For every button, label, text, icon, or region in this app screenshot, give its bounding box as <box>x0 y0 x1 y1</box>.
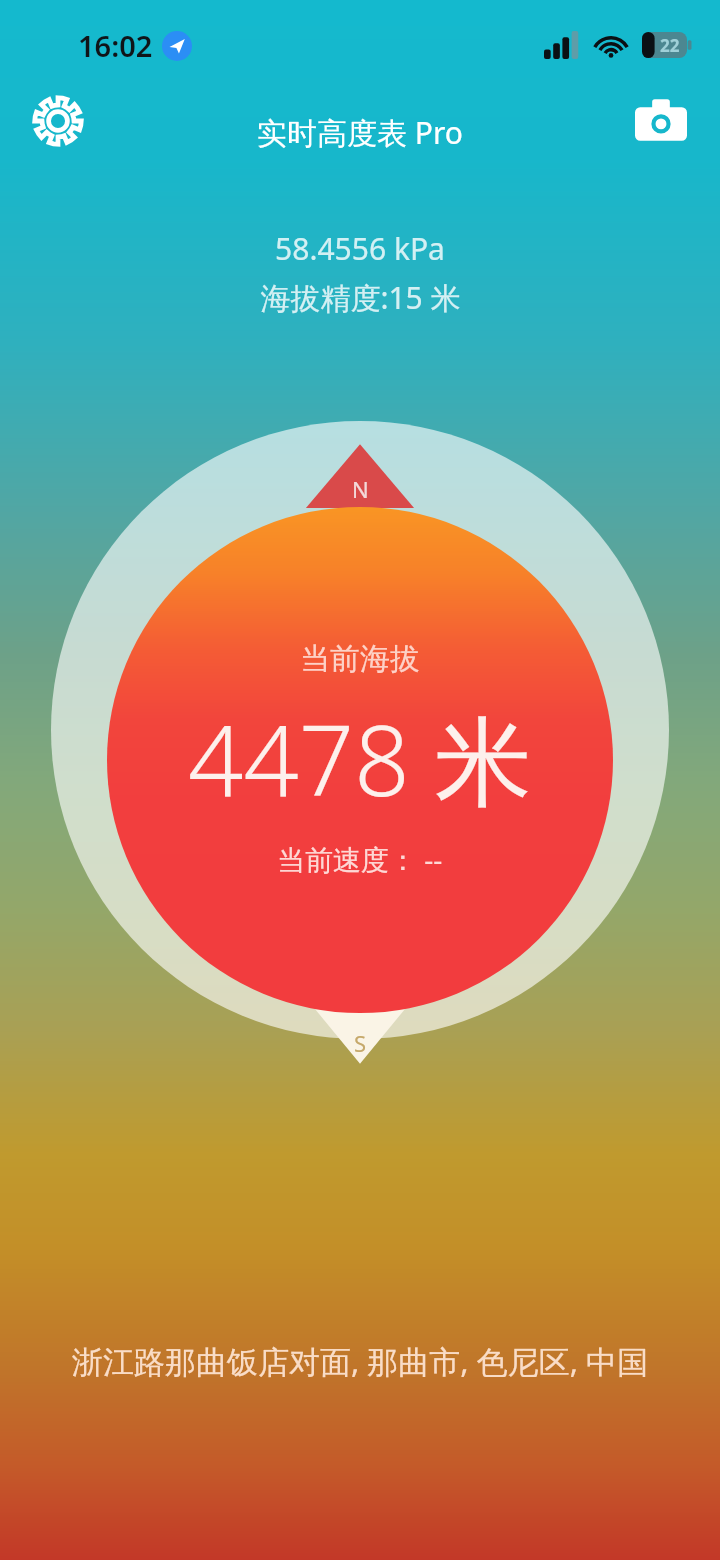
staticText: 当前速度： -- <box>277 840 443 878</box>
button[interactable]: 实时高度表 Pro <box>257 112 463 153</box>
button[interactable]: 浙江路那曲饭店对面, 那曲市, 色尼区, 中国 <box>56 1340 664 1382</box>
staticText: 16:02 <box>78 26 153 65</box>
button[interactable] <box>0 0 720 1560</box>
button[interactable]: Camera <box>624 83 698 157</box>
staticText: N <box>352 474 369 504</box>
staticText: 22 <box>660 34 680 57</box>
staticText: 当前海拔 <box>300 640 420 678</box>
staticText: 海拔精度:15 米 <box>260 277 461 318</box>
staticText: S <box>354 1028 367 1058</box>
staticText: 实时高度表 Pro <box>257 112 463 153</box>
staticText: 浙江路那曲饭店对面, 那曲市, 色尼区, 中国 <box>56 1340 664 1382</box>
button[interactable]: Settings <box>20 83 96 159</box>
staticText: 58.4556 kPa <box>275 228 445 269</box>
staticText: 4478 米 <box>188 692 532 824</box>
